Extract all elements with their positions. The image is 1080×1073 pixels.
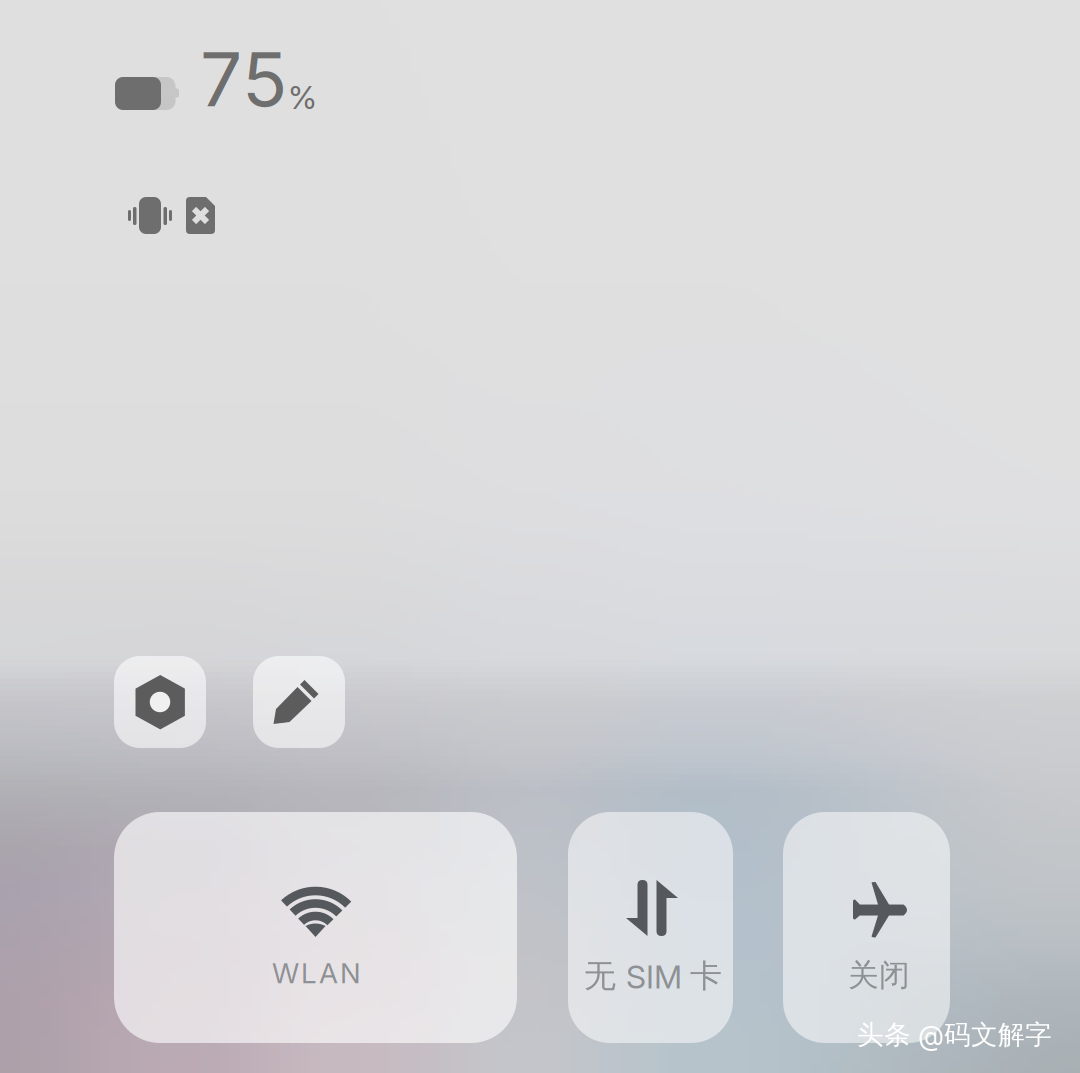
staticText: 关闭 <box>848 956 910 995</box>
button[interactable]: 关闭 <box>783 812 950 1043</box>
staticText: WLAN <box>272 956 361 990</box>
staticText: % <box>288 78 317 117</box>
staticText: 无 SIM 卡 <box>584 956 722 996</box>
staticText: 头条 @码文解字 <box>857 1018 1052 1052</box>
button[interactable]: 无 SIM 卡 <box>568 812 733 1043</box>
button[interactable]: Settings <box>114 656 206 748</box>
button[interactable]: Edit <box>253 656 345 748</box>
staticText: 75 <box>200 34 287 124</box>
button[interactable]: WLAN <box>114 812 517 1043</box>
